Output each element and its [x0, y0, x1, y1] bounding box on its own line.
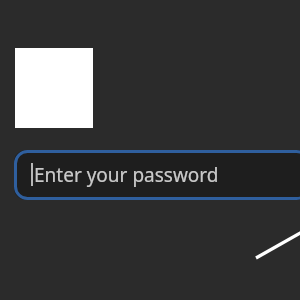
staticText: Enter your password: [34, 162, 219, 188]
button[interactable]: Enter your password: [14, 150, 300, 200]
